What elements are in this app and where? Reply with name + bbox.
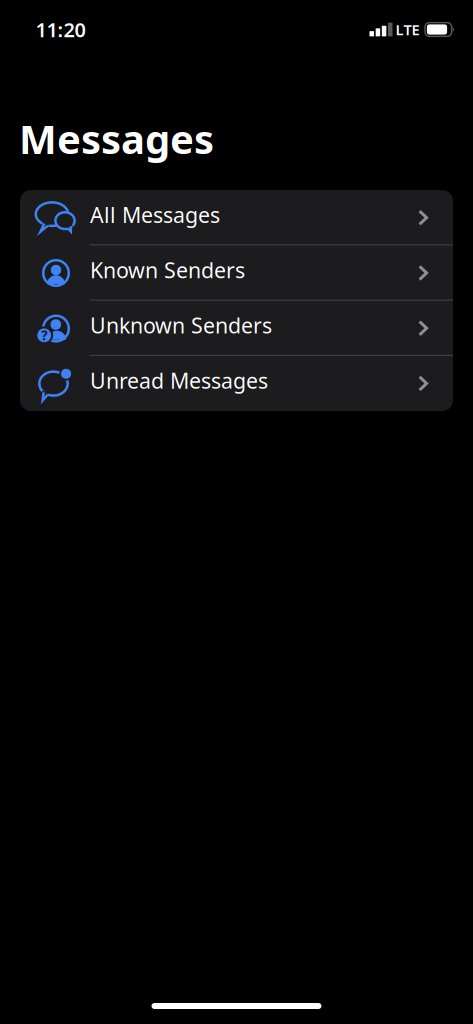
button[interactable]: All Messages [20,190,453,245]
button[interactable]: ? [20,301,453,356]
staticText: Messages [19,112,214,165]
button[interactable]: Known Senders [20,245,453,301]
button[interactable]: Unread Messages [20,356,453,411]
staticText: Unknown Senders [90,311,272,339]
staticText: Unread Messages [90,366,268,395]
staticText: LTE [395,20,419,39]
staticText: All Messages [90,201,220,229]
staticText: 11:20 [35,16,85,43]
staticText: ? [41,326,47,344]
staticText: Known Senders [90,256,245,284]
